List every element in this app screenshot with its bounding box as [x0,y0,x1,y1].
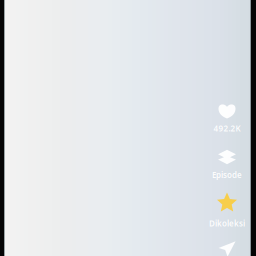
button[interactable]: Episodes [201,141,253,187]
staticText: 492.2K [213,123,240,134]
button[interactable]: Share [201,233,253,256]
button[interactable]: Like [201,95,253,141]
button[interactable]: Collected [201,187,253,233]
staticText: Dikoleksi [209,218,245,229]
staticText: Episode [212,170,242,180]
